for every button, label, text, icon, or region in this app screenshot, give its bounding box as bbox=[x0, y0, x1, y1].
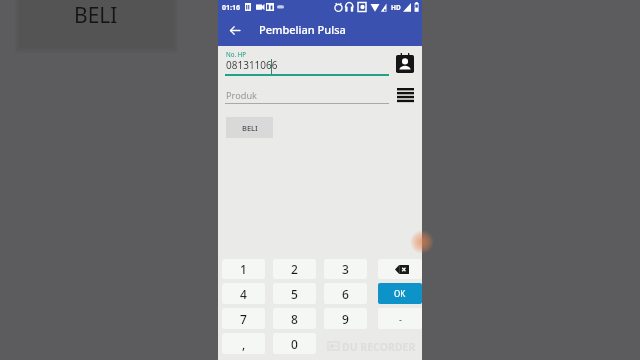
staticText: OK bbox=[394, 288, 406, 299]
staticText: 6 bbox=[342, 286, 349, 302]
staticText: 01:16 bbox=[222, 3, 240, 13]
button[interactable]: Back bbox=[223, 18, 247, 42]
staticText: Pembelian Pulsa bbox=[259, 22, 346, 37]
button[interactable]: 7 bbox=[222, 308, 265, 329]
staticText: 7 bbox=[240, 311, 247, 327]
staticText: 1 bbox=[240, 261, 247, 277]
button[interactable]: , bbox=[222, 333, 265, 354]
button[interactable]: 5 bbox=[273, 283, 316, 304]
button[interactable]: Choose product bbox=[393, 83, 417, 107]
staticText: BELI bbox=[242, 123, 258, 133]
button[interactable]: Pick contact bbox=[393, 51, 417, 75]
staticText: 2 bbox=[291, 261, 298, 277]
staticText: 081311066 bbox=[226, 58, 278, 72]
staticText: 3 bbox=[342, 261, 349, 277]
staticText: Produk bbox=[226, 89, 257, 102]
button[interactable]: 2 bbox=[273, 259, 316, 279]
button[interactable]: 4 bbox=[222, 283, 265, 304]
button[interactable]: BELI bbox=[226, 117, 273, 138]
staticText: HD bbox=[391, 3, 401, 12]
button[interactable]: Floating action bbox=[410, 231, 422, 253]
staticText: 0 bbox=[291, 336, 298, 352]
staticText: 8 bbox=[291, 311, 298, 327]
staticText: 5 bbox=[291, 286, 298, 302]
staticText: No. HP bbox=[226, 50, 247, 58]
button[interactable]: 8 bbox=[273, 308, 316, 329]
button[interactable]: OK bbox=[378, 283, 422, 304]
button[interactable]: 3 bbox=[324, 259, 367, 279]
staticText: DU RECORDER bbox=[342, 340, 416, 354]
staticText: - bbox=[399, 313, 402, 325]
staticText: 4 bbox=[240, 286, 247, 302]
button[interactable]: 0 bbox=[273, 333, 316, 354]
button[interactable]: - bbox=[378, 308, 422, 329]
button[interactable]: Backspace bbox=[378, 259, 422, 279]
staticText: , bbox=[242, 336, 246, 352]
button[interactable]: 1 bbox=[222, 259, 265, 279]
staticText: 9 bbox=[342, 311, 349, 327]
button[interactable]: 9 bbox=[324, 308, 367, 329]
staticText: BELI bbox=[74, 1, 118, 30]
button[interactable]: 6 bbox=[324, 283, 367, 304]
